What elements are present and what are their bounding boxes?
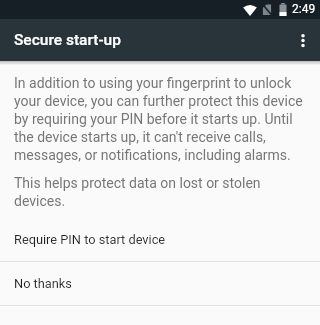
button[interactable]: No thanks [0, 262, 320, 305]
button[interactable]: More options [286, 23, 320, 57]
staticText: Secure start-up [14, 31, 121, 49]
staticText: Require PIN to start device [14, 232, 166, 247]
staticText: In addition to using your fingerprint to… [14, 75, 307, 164]
staticText: 2:49 [292, 2, 316, 16]
button[interactable]: Require PIN to start device [0, 217, 320, 261]
staticText: This helps protect data on lost or stole… [14, 175, 307, 210]
staticText: No thanks [14, 276, 72, 291]
